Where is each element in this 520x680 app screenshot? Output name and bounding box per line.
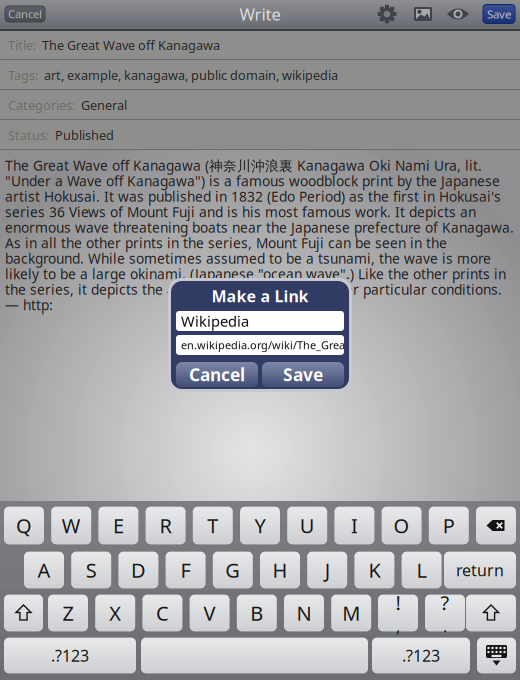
- button[interactable]: return: [444, 551, 516, 589]
- staticText: E: [113, 512, 124, 539]
- button[interactable]: [466, 594, 516, 632]
- button[interactable]: Save: [262, 362, 344, 387]
- button[interactable]: H: [260, 551, 300, 589]
- staticText: Y: [254, 512, 265, 539]
- staticText: Q: [16, 512, 32, 539]
- staticText: Status:: [8, 126, 49, 144]
- staticText: G: [225, 557, 240, 583]
- staticText: U: [300, 512, 315, 539]
- staticText: ,: [396, 616, 400, 637]
- staticText: Save: [487, 6, 511, 22]
- button[interactable]: T: [193, 506, 233, 545]
- staticText: Write: [239, 3, 280, 25]
- staticText: The Great Wave off Kanagawa (神奈川沖浪裏 Kana…: [5, 156, 514, 286]
- button[interactable]: .?123: [4, 637, 136, 674]
- button[interactable]: N: [284, 594, 324, 632]
- button[interactable]: ?: [425, 594, 465, 632]
- staticText: The Great Wave off Kanagawa: [42, 36, 220, 54]
- staticText: A: [37, 557, 50, 583]
- button[interactable]: B: [237, 594, 277, 632]
- staticText: R: [160, 512, 172, 539]
- staticText: N: [296, 600, 311, 626]
- staticText: Published: [55, 126, 114, 144]
- staticText: V: [204, 600, 216, 626]
- staticText: ?: [440, 589, 449, 616]
- staticText: .?123: [402, 645, 440, 666]
- staticText: .?123: [51, 645, 89, 666]
- button[interactable]: Save: [482, 4, 515, 24]
- button[interactable]: !: [378, 594, 418, 632]
- staticText: K: [368, 557, 380, 583]
- button[interactable]: C: [142, 594, 182, 632]
- button[interactable]: U: [287, 506, 327, 545]
- button[interactable]: Preview: [445, 1, 471, 27]
- staticText: Cancel: [8, 6, 42, 22]
- staticText: Categories:: [8, 96, 75, 114]
- button[interactable]: Settings: [374, 1, 400, 27]
- button[interactable]: X: [95, 594, 135, 632]
- button[interactable]: Y: [240, 506, 280, 545]
- staticText: General: [81, 96, 127, 114]
- staticText: Wikipedia: [181, 311, 249, 331]
- staticText: J: [325, 557, 330, 583]
- staticText: Tags:: [8, 66, 38, 84]
- button[interactable]: Q: [4, 506, 44, 545]
- button[interactable]: K: [354, 551, 394, 589]
- staticText: !: [395, 589, 400, 616]
- staticText: art, example, kanagawa, public domain, w…: [44, 66, 338, 84]
- staticText: Make a Link: [211, 285, 308, 307]
- button[interactable]: [477, 637, 516, 674]
- staticText: I: [351, 512, 358, 539]
- staticText: T: [207, 512, 218, 539]
- staticText: O: [394, 512, 410, 539]
- staticText: C: [156, 600, 169, 626]
- staticText: en.wikipedia.org/wiki/The_Great: [181, 338, 349, 352]
- button[interactable]: P: [429, 506, 469, 545]
- staticText: S: [86, 557, 97, 583]
- staticText: Save: [283, 363, 323, 386]
- button[interactable]: W: [51, 506, 91, 545]
- button[interactable]: Cancel: [176, 362, 258, 387]
- staticText: D: [131, 557, 146, 583]
- staticText: F: [181, 557, 191, 583]
- button[interactable]: R: [146, 506, 186, 545]
- button[interactable]: [476, 506, 516, 545]
- button[interactable]: G: [213, 551, 253, 589]
- button[interactable]: V: [190, 594, 230, 632]
- button[interactable]: L: [402, 551, 442, 589]
- staticText: H: [272, 557, 287, 583]
- button[interactable]: F: [166, 551, 206, 589]
- staticText: .: [443, 616, 447, 637]
- button[interactable]: Cancel: [4, 5, 45, 22]
- button[interactable]: I: [334, 506, 374, 545]
- staticText: P: [443, 512, 455, 539]
- staticText: Title:: [8, 36, 36, 54]
- staticText: return: [456, 559, 504, 581]
- button[interactable]: M: [331, 594, 371, 632]
- staticText: X: [109, 600, 121, 626]
- button[interactable]: A: [24, 551, 64, 589]
- button[interactable]: .?123: [372, 637, 470, 674]
- button[interactable]: [141, 637, 368, 674]
- button[interactable]: D: [118, 551, 158, 589]
- staticText: L: [417, 557, 427, 583]
- button[interactable]: Z: [48, 594, 88, 632]
- staticText: W: [62, 512, 81, 539]
- staticText: B: [250, 600, 263, 626]
- button[interactable]: Insert image: [410, 1, 436, 27]
- button[interactable]: S: [71, 551, 111, 589]
- button[interactable]: O: [382, 506, 422, 545]
- button[interactable]: [4, 594, 43, 632]
- button[interactable]: E: [98, 506, 138, 545]
- staticText: M: [342, 600, 360, 626]
- staticText: Cancel: [189, 363, 245, 386]
- staticText: Z: [62, 600, 73, 626]
- button[interactable]: J: [307, 551, 347, 589]
